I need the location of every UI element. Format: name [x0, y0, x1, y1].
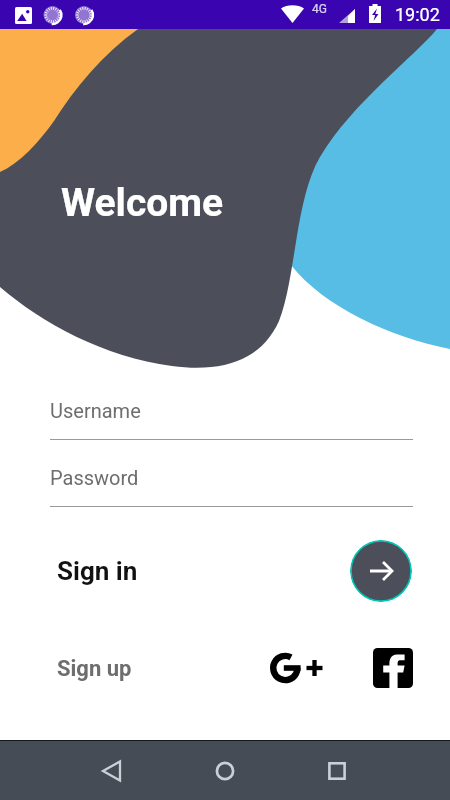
button[interactable]: Recents	[307, 741, 367, 800]
staticText: Password	[50, 466, 139, 489]
staticText: 19:02	[395, 4, 440, 25]
button[interactable]: Sign in with Google	[264, 644, 330, 692]
button[interactable]: Sign up	[41, 645, 147, 693]
button[interactable]: Sign in	[350, 540, 412, 602]
button[interactable]: Home	[195, 741, 255, 800]
button[interactable]: Username	[50, 399, 413, 440]
staticText: Username	[50, 399, 141, 422]
button[interactable]: Back	[82, 741, 142, 800]
button[interactable]: Password	[50, 466, 413, 507]
staticText: 4G	[312, 2, 327, 16]
staticText: Sign up	[57, 656, 132, 682]
button[interactable]: Sign in with Facebook	[368, 644, 417, 692]
button[interactable]: Sign in	[41, 547, 151, 595]
staticText: Sign in	[57, 556, 138, 586]
staticText: Welcome	[61, 180, 224, 226]
